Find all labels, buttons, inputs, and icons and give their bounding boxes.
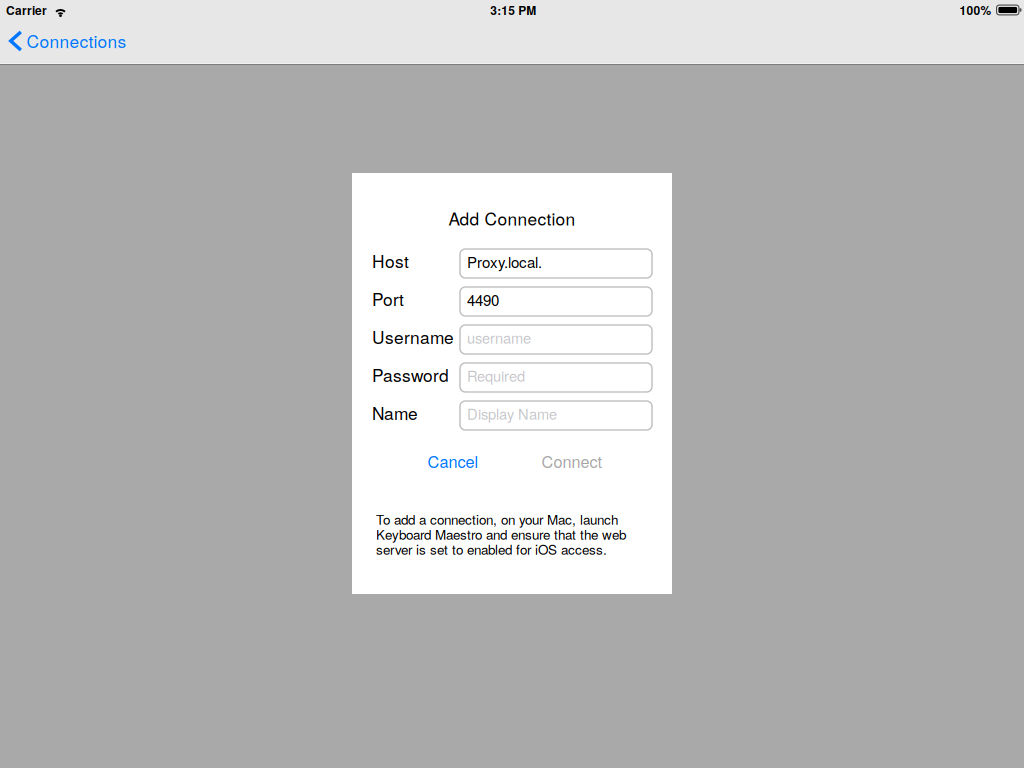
button[interactable]: Required [460,363,652,392]
staticText: To add a connection, on your Mac, launch… [376,511,626,556]
staticText: Cancel [427,449,478,473]
staticText: Display Name [467,403,557,424]
staticText: Connect [541,449,602,473]
staticText: username [467,327,531,348]
staticText: Proxy.local. [467,251,542,272]
staticText: Connections [27,28,127,53]
button[interactable]: Connect [522,449,622,473]
staticText: 100% [959,1,991,19]
button[interactable]: 4490 [460,287,652,316]
staticText: 4490 [467,289,499,310]
staticText: 3:15 PM [490,1,536,19]
button[interactable]: Proxy.local. [460,249,652,278]
staticText: Port [372,286,404,311]
button[interactable]: username [460,325,652,354]
staticText: Add Connection [448,206,575,230]
staticText: Carrier [6,1,47,19]
button[interactable]: Connections [0,19,139,63]
staticText: Required [467,365,525,386]
staticText: Password [372,362,449,387]
button[interactable]: Display Name [460,401,652,430]
staticText: Host [372,248,409,273]
staticText: Name [372,400,418,425]
button[interactable]: Cancel [403,449,503,473]
staticText: Username [372,324,454,349]
